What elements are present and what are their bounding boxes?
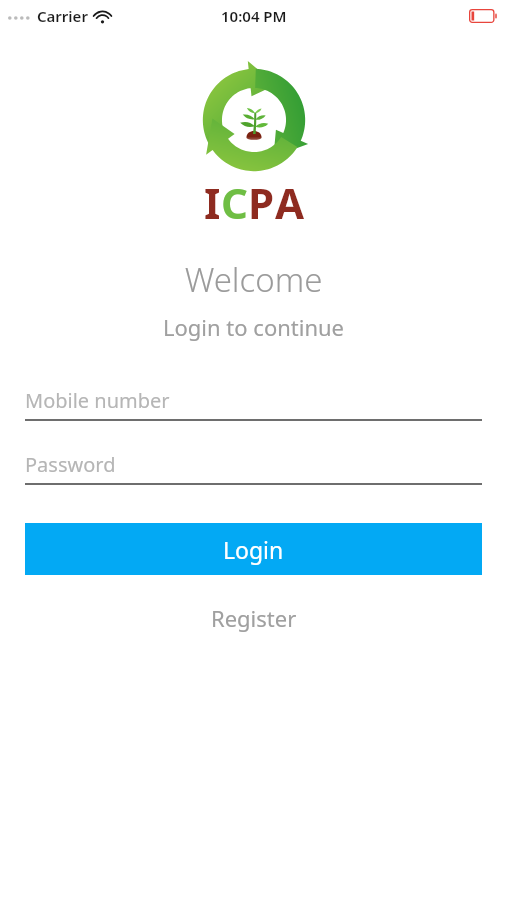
staticText: Login bbox=[223, 534, 284, 565]
button[interactable]: Login bbox=[25, 523, 482, 575]
staticText: A bbox=[275, 174, 305, 231]
staticText: Password bbox=[25, 451, 116, 478]
staticText: Mobile number bbox=[25, 387, 170, 414]
button[interactable]: Password bbox=[25, 448, 482, 485]
staticText: 10:04 PM bbox=[221, 6, 287, 26]
staticText: Register bbox=[211, 603, 297, 633]
staticText: C bbox=[221, 174, 248, 231]
staticText: Login to continue bbox=[0, 312, 507, 342]
staticText: Carrier bbox=[37, 6, 88, 26]
staticText: Welcome bbox=[0, 257, 507, 302]
staticText: P bbox=[248, 174, 275, 231]
staticText: I bbox=[204, 174, 221, 231]
button[interactable]: Register bbox=[0, 597, 507, 639]
button[interactable]: Mobile number bbox=[25, 384, 482, 421]
